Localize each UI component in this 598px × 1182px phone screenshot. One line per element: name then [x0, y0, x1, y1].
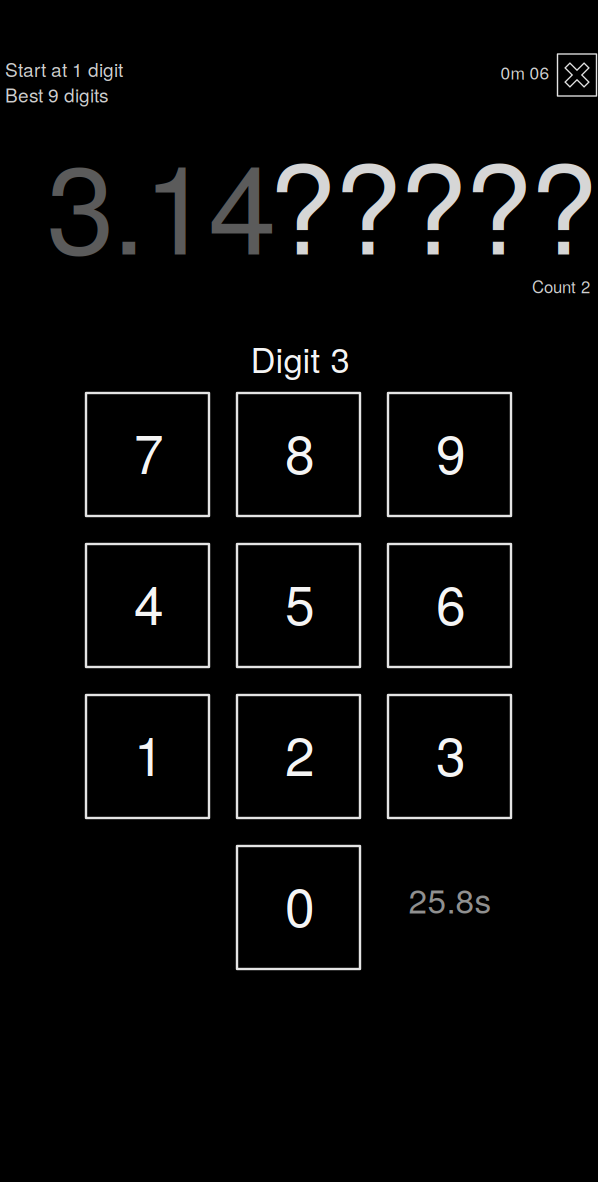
staticText: 25.8s	[408, 875, 491, 923]
staticText: Start at 1 digit	[5, 55, 123, 82]
staticText: 3	[436, 715, 466, 791]
button[interactable]: 0	[237, 846, 360, 969]
staticText: 9	[436, 413, 466, 489]
staticText: 5	[285, 564, 315, 640]
button[interactable]: 5	[237, 544, 360, 667]
staticText: 3.14	[46, 114, 276, 289]
staticText: ?????	[268, 114, 598, 289]
button[interactable]: 3	[388, 695, 511, 818]
staticText: 1	[134, 715, 164, 791]
staticText: 7	[134, 413, 164, 489]
button[interactable]: 7	[86, 393, 209, 516]
staticText: 4	[134, 564, 164, 640]
staticText: 0m 06	[500, 60, 549, 84]
staticText: Count 2	[532, 274, 590, 298]
button[interactable]: 8	[237, 393, 360, 516]
button[interactable]: 6	[388, 544, 511, 667]
button[interactable]: 1	[86, 695, 209, 818]
staticText: Best 9 digits	[5, 80, 109, 108]
staticText: 6	[436, 564, 466, 640]
button[interactable]: Close	[557, 54, 596, 96]
staticText: Digit 3	[250, 333, 349, 383]
staticText: 8	[285, 413, 315, 489]
staticText: 0	[285, 866, 315, 942]
button[interactable]: 2	[237, 695, 360, 818]
staticText: 2	[285, 715, 315, 791]
button[interactable]: 4	[86, 544, 209, 667]
button[interactable]: 9	[388, 393, 511, 516]
